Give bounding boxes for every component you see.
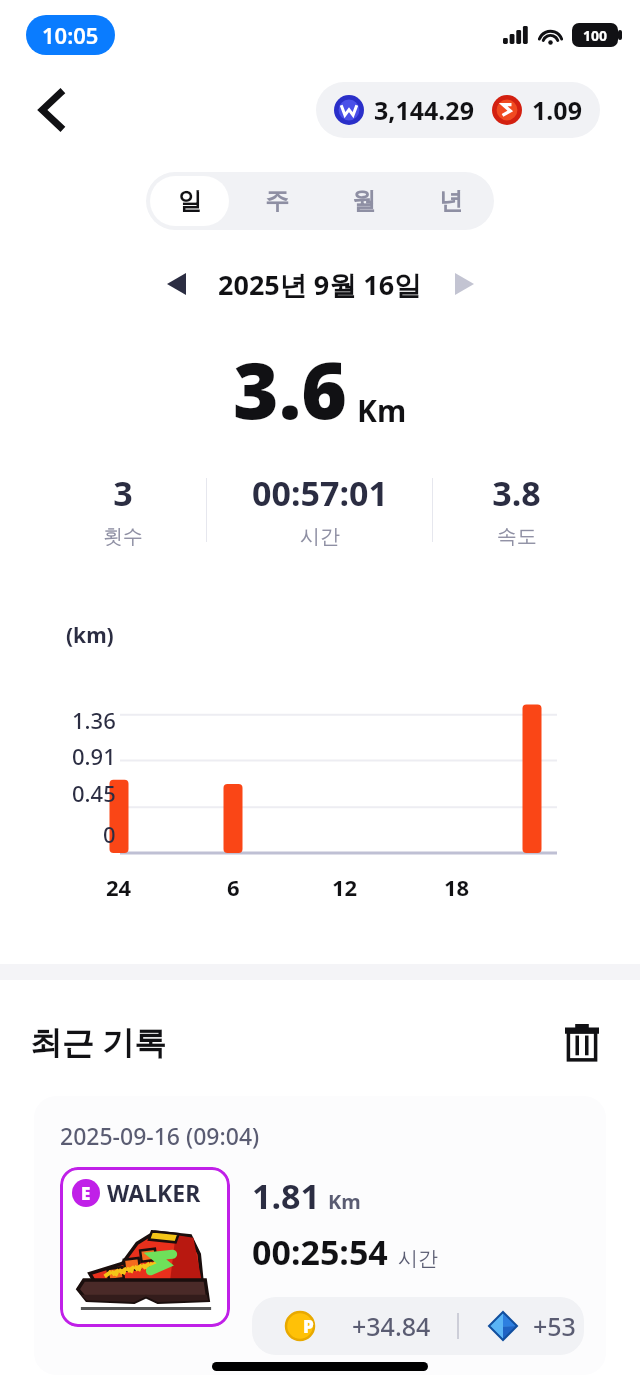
staticText: 최근 기록 bbox=[30, 1020, 167, 1064]
staticText: 1.09 bbox=[532, 93, 582, 127]
staticText: 1.36 bbox=[72, 705, 116, 735]
button[interactable]: P bbox=[252, 1297, 584, 1355]
button[interactable]: Previous day bbox=[152, 260, 200, 308]
staticText: 10:05 bbox=[42, 20, 99, 50]
staticText: 시간 bbox=[398, 1246, 438, 1271]
staticText: 00:57:01 bbox=[252, 470, 388, 516]
button[interactable]: E bbox=[60, 1167, 230, 1327]
staticText: 횟수 bbox=[103, 524, 143, 549]
staticText: 년 bbox=[439, 186, 463, 216]
button[interactable]: 2025-09-16 (09:04) bbox=[34, 1096, 606, 1375]
button[interactable]: 00:57:01 bbox=[207, 470, 432, 549]
staticText: 시간 bbox=[300, 524, 340, 549]
staticText: 일 bbox=[178, 186, 202, 216]
staticText: Km bbox=[328, 1188, 361, 1215]
button[interactable]: Back bbox=[26, 84, 78, 136]
staticText: 2025년 9월 16일 bbox=[218, 266, 422, 303]
staticText: 0 bbox=[103, 819, 116, 849]
button[interactable]: 년 bbox=[411, 176, 490, 226]
button[interactable]: 3,144.29 bbox=[316, 82, 600, 138]
button[interactable]: Delete records bbox=[554, 1014, 610, 1070]
staticText: 24 bbox=[106, 872, 132, 902]
staticText: WALKER bbox=[107, 1177, 201, 1208]
staticText: (km) bbox=[66, 621, 114, 650]
staticText: 속도 bbox=[497, 524, 537, 549]
staticText: +53 bbox=[533, 1309, 576, 1343]
button[interactable]: 월 bbox=[324, 176, 403, 226]
staticText: 2025-09-16 (09:04) bbox=[60, 1120, 260, 1151]
staticText: 1.81 bbox=[252, 1173, 320, 1219]
staticText: 0.91 bbox=[72, 741, 116, 771]
button[interactable]: 일 bbox=[150, 176, 229, 226]
staticText: E bbox=[81, 1182, 91, 1205]
button[interactable]: 3.8 bbox=[433, 470, 600, 549]
staticText: 6 bbox=[227, 872, 240, 902]
staticText: 0.45 bbox=[72, 778, 116, 808]
staticText: 00:25:54 bbox=[252, 1229, 388, 1275]
staticText: 월 bbox=[352, 186, 376, 216]
staticText: 3 bbox=[113, 470, 133, 516]
staticText: 3,144.29 bbox=[374, 93, 474, 127]
staticText: Km bbox=[357, 390, 407, 431]
staticText: +34.84 bbox=[352, 1309, 431, 1343]
staticText: 3.8 bbox=[492, 470, 541, 516]
staticText: 18 bbox=[444, 872, 470, 902]
button[interactable]: Next day bbox=[440, 260, 488, 308]
staticText: 3.6 bbox=[233, 336, 347, 442]
staticText: 12 bbox=[332, 872, 358, 902]
staticText: 주 bbox=[265, 186, 289, 216]
button[interactable]: 주 bbox=[237, 176, 316, 226]
staticText: 100 bbox=[583, 26, 608, 45]
button[interactable]: 3 bbox=[40, 470, 206, 549]
staticText: P bbox=[303, 1315, 314, 1338]
